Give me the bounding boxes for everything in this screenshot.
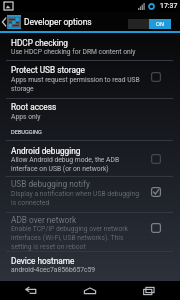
button[interactable]: Android debugging — [0, 140, 180, 177]
button[interactable]: HDCP checking — [0, 32, 180, 60]
button[interactable]: USB debugging notify — [0, 176, 180, 212]
staticText: Developer options — [24, 17, 92, 27]
button[interactable]: Back — [3, 281, 59, 300]
button[interactable]: Home — [62, 281, 118, 300]
staticText: ADB over network — [11, 215, 77, 225]
staticText: Allow Android debug mode, the ADB interf… — [11, 156, 145, 173]
staticText: Apps must request permission to read USB… — [11, 76, 145, 93]
staticText: Android debugging — [11, 146, 81, 156]
staticText: Device hostname — [11, 256, 75, 266]
staticText: Use HDCP checking for DRM content only — [11, 48, 173, 56]
button[interactable]: Recent apps — [121, 281, 177, 300]
button[interactable]: Device hostname — [0, 251, 180, 282]
staticText: Display a notification when USB debuggin… — [11, 190, 145, 207]
staticText: HDCP checking — [11, 38, 68, 48]
staticText: Root access — [11, 102, 57, 112]
staticText: Enable TCP/IP debugging over network int… — [11, 225, 145, 251]
button[interactable]: Developer options on — [128, 19, 171, 29]
button[interactable]: Navigate up — [0, 12, 8, 31]
staticText: DEBUGGING — [11, 129, 42, 136]
staticText: android-4cec7a856b657c59 — [11, 266, 173, 274]
staticText: 17:37 — [160, 2, 178, 10]
staticText: Apps only — [11, 113, 173, 121]
button[interactable]: Protect USB storage — [0, 60, 180, 98]
staticText: USB debugging notify — [11, 179, 90, 189]
staticText: Protect USB storage — [11, 65, 85, 75]
button[interactable]: ADB over network — [0, 212, 180, 251]
staticText: ON — [156, 21, 165, 28]
button[interactable]: Root access — [0, 98, 180, 122]
